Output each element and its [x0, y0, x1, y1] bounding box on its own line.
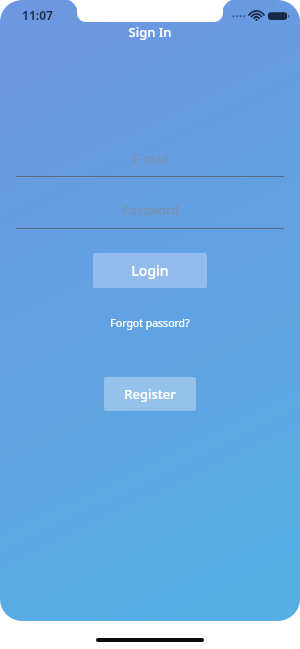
staticText: 11:07: [22, 7, 53, 23]
button[interactable]: Forgot passord?: [95, 313, 205, 333]
button[interactable]: E-mail: [16, 140, 284, 177]
other: Home indicator: [96, 638, 204, 642]
staticText: Forgot passord?: [110, 316, 190, 330]
button[interactable]: Login: [93, 253, 207, 288]
button[interactable]: Password: [16, 192, 284, 229]
staticText: E-mail: [132, 150, 169, 167]
staticText: Login: [131, 261, 169, 280]
staticText: Register: [124, 385, 176, 403]
staticText: Sign In: [128, 23, 172, 41]
staticText: Password: [122, 202, 179, 219]
button[interactable]: Register: [104, 377, 196, 411]
